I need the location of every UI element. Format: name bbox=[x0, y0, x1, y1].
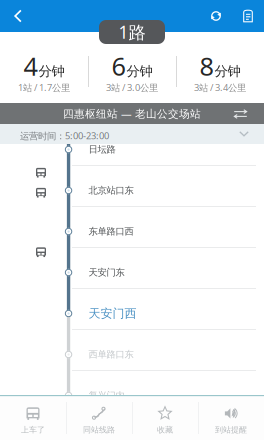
button[interactable]: 北京站口东 bbox=[0, 166, 264, 207]
button[interactable]: 东单路口西 bbox=[0, 207, 264, 248]
button[interactable]: 6 bbox=[88, 32, 176, 103]
staticText: 6 bbox=[111, 49, 125, 83]
staticText: 运营时间：5:00-23:00 bbox=[20, 129, 109, 142]
staticText: 同站线路 bbox=[83, 425, 115, 435]
button[interactable]: 8 bbox=[176, 32, 264, 103]
button[interactable]: 天安门西 bbox=[0, 289, 264, 330]
staticText: 3站 / 3.0公里 bbox=[106, 81, 158, 94]
staticText: 1站 / 1.7公里 bbox=[18, 81, 70, 94]
staticText: 日坛路 bbox=[88, 144, 115, 155]
button[interactable]: 1路 bbox=[99, 20, 165, 44]
button[interactable]: 同站线路 bbox=[66, 396, 132, 440]
staticText: 分钟 bbox=[126, 63, 152, 80]
button[interactable]: Refresh bbox=[201, 0, 231, 32]
button[interactable]: 运营时间：5:00-23:00 bbox=[0, 124, 264, 144]
button[interactable]: 西单路口东 bbox=[0, 330, 264, 371]
staticText: 分钟 bbox=[38, 63, 64, 80]
button[interactable]: 复兴门内 bbox=[0, 371, 264, 412]
button[interactable]: 收藏 bbox=[132, 396, 198, 440]
button[interactable]: 天安门东 bbox=[0, 248, 264, 289]
staticText: 北京站口东 bbox=[88, 185, 133, 196]
staticText: 天安门西 bbox=[88, 306, 136, 321]
button[interactable]: 到站提醒 bbox=[198, 396, 264, 440]
staticText: 8 bbox=[199, 49, 213, 83]
button[interactable]: 日坛路 bbox=[0, 144, 264, 166]
staticText: 复兴门内 bbox=[88, 390, 124, 401]
button[interactable]: 上车了 bbox=[0, 396, 66, 440]
staticText: 收藏 bbox=[157, 425, 173, 435]
staticText: 天安门东 bbox=[88, 267, 124, 278]
button[interactable]: 4 bbox=[0, 32, 88, 103]
staticText: 到站提醒 bbox=[215, 425, 247, 435]
button[interactable]: Back bbox=[2, 0, 34, 32]
button[interactable]: Timetable bbox=[233, 0, 263, 32]
staticText: 东单路口西 bbox=[88, 226, 133, 237]
staticText: 四惠枢纽站 — 老山公交场站 bbox=[63, 106, 201, 121]
staticText: 分钟 bbox=[214, 63, 240, 80]
staticText: 上车了 bbox=[21, 425, 45, 435]
staticText: 3站 / 3.4公里 bbox=[194, 81, 246, 94]
staticText: 1路 bbox=[118, 20, 145, 43]
button[interactable]: 四惠枢纽站 — 老山公交场站 bbox=[0, 103, 264, 124]
staticText: 4 bbox=[23, 49, 37, 83]
staticText: 西单路口东 bbox=[88, 349, 133, 360]
